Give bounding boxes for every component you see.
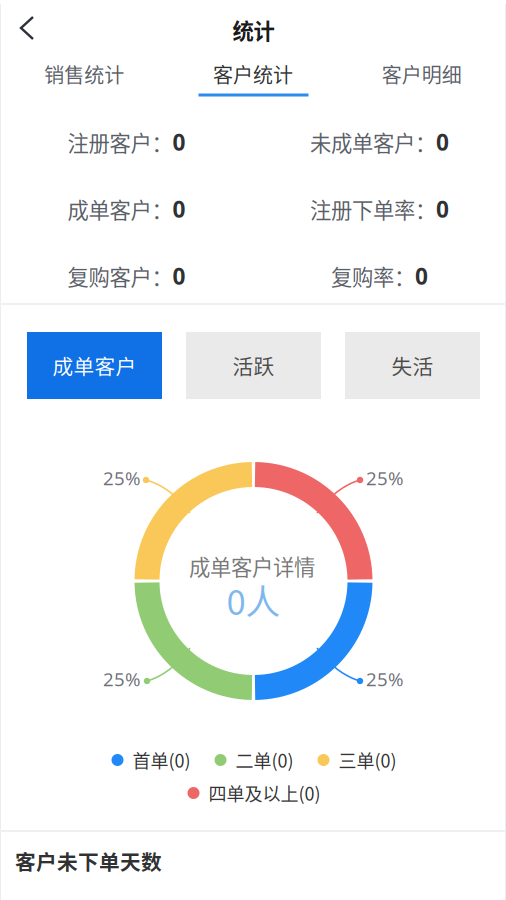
staticText: 客户未下单天数 — [15, 846, 162, 876]
staticText: 注册客户： — [67, 127, 172, 157]
staticText: 0 — [436, 194, 449, 224]
staticText: 25% — [366, 667, 404, 691]
staticText: 活跃 — [232, 350, 274, 380]
staticText: 成单客户详情 — [189, 551, 315, 581]
staticText: 未成单客户： — [310, 127, 436, 157]
button[interactable]: 客户明细 — [337, 54, 506, 94]
staticText: 失活 — [391, 350, 433, 380]
staticText: 客户明细 — [382, 59, 462, 88]
staticText: 25% — [103, 667, 141, 691]
staticText: 25% — [103, 466, 141, 490]
staticText: 统计 — [232, 15, 274, 45]
staticText: 复购客户： — [67, 261, 172, 291]
staticText: 三单(0) — [338, 747, 396, 773]
staticText: 二单(0) — [235, 747, 293, 773]
staticText: 成单客户： — [67, 194, 172, 224]
button[interactable]: 销售统计 — [0, 54, 169, 94]
staticText: 复购率： — [331, 261, 415, 291]
staticText: 成单客户 — [52, 350, 136, 380]
staticText: 25% — [366, 466, 404, 490]
staticText: 四单及以上(0) — [208, 780, 320, 806]
button[interactable]: 成单客户 — [27, 332, 162, 399]
staticText: 0 — [172, 194, 185, 224]
staticText: 注册下单率： — [310, 194, 436, 224]
staticText: 0 — [172, 261, 185, 291]
button[interactable]: 失活 — [345, 332, 480, 399]
staticText: 0人 — [226, 575, 280, 625]
staticText: 0 — [172, 127, 185, 157]
staticText: 0 — [436, 127, 449, 157]
staticText: 销售统计 — [44, 59, 124, 88]
button[interactable]: 客户统计 — [169, 54, 337, 94]
staticText: 客户统计 — [213, 59, 293, 88]
button[interactable]: 返回 — [0, 0, 54, 56]
staticText: 0 — [415, 261, 428, 291]
button[interactable]: 活跃 — [186, 332, 321, 399]
staticText: 首单(0) — [132, 747, 190, 773]
